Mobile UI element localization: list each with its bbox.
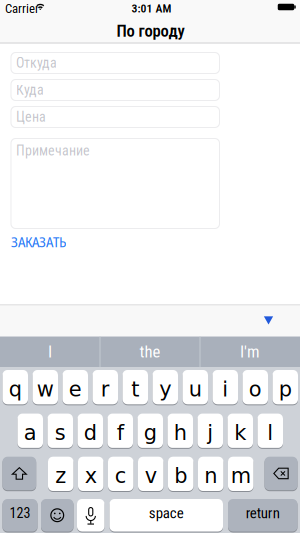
button[interactable]: a: [17, 413, 43, 448]
staticText: p: [279, 377, 292, 401]
staticText: I'm: [240, 342, 260, 361]
staticText: v: [145, 464, 157, 488]
staticText: Куда: [16, 82, 44, 98]
staticText: s: [55, 421, 66, 445]
staticText: space: [149, 504, 184, 522]
staticText: l: [267, 421, 273, 445]
button[interactable]: e: [62, 369, 88, 405]
staticText: q: [9, 377, 22, 401]
staticText: i: [222, 377, 228, 401]
button[interactable]: Numbers: [2, 498, 37, 532]
staticText: the: [139, 342, 160, 361]
button[interactable]: u: [182, 369, 208, 405]
button[interactable]: s: [47, 413, 73, 448]
staticText: o: [249, 377, 262, 401]
button[interactable]: ЗАКАЗАТЬ: [11, 232, 111, 250]
button[interactable]: i: [212, 369, 238, 405]
staticText: d: [84, 421, 97, 445]
button[interactable]: h: [167, 413, 193, 448]
staticText: z: [55, 464, 66, 488]
button[interactable]: q: [2, 369, 28, 405]
staticText: j: [207, 421, 213, 445]
staticText: f: [117, 421, 124, 445]
button[interactable]: w: [32, 369, 58, 405]
button[interactable]: o: [242, 369, 268, 405]
button[interactable]: the: [100, 336, 199, 367]
button[interactable]: I: [0, 336, 99, 367]
button[interactable]: b: [168, 456, 193, 491]
button[interactable]: x: [78, 456, 103, 491]
staticText: m: [231, 464, 251, 488]
button[interactable]: Emoji: [41, 498, 73, 532]
staticText: e: [69, 377, 82, 401]
button[interactable]: m: [228, 456, 253, 491]
button[interactable]: c: [108, 456, 133, 491]
staticText: По городу: [116, 21, 184, 41]
staticText: I: [48, 342, 52, 361]
staticText: 123: [9, 505, 30, 522]
staticText: k: [234, 421, 246, 445]
staticText: Откуда: [16, 55, 57, 71]
staticText: y: [159, 377, 171, 401]
button[interactable]: I'm: [200, 336, 299, 367]
staticText: Примечание: [16, 142, 90, 159]
button[interactable]: z: [48, 456, 73, 491]
staticText: Carrier: [5, 1, 39, 16]
staticText: w: [37, 377, 54, 401]
button[interactable]: r: [92, 369, 118, 405]
button[interactable]: t: [122, 369, 148, 405]
button[interactable]: Dictate: [77, 498, 104, 532]
button[interactable]: Shift: [2, 456, 36, 491]
button[interactable]: n: [198, 456, 223, 491]
staticText: t: [131, 377, 139, 401]
button[interactable]: v: [138, 456, 163, 491]
button[interactable]: l: [257, 413, 283, 448]
staticText: 3:01 AM: [131, 2, 171, 15]
staticText: r: [101, 377, 110, 401]
staticText: n: [204, 464, 217, 488]
button[interactable]: Dismiss keyboard: [264, 316, 273, 324]
button[interactable]: Примечание: [10, 138, 220, 229]
staticText: a: [24, 421, 37, 445]
button[interactable]: y: [152, 369, 178, 405]
button[interactable]: d: [77, 413, 103, 448]
button[interactable]: return: [228, 498, 297, 532]
staticText: ЗАКАЗАТЬ: [11, 231, 66, 252]
staticText: b: [174, 464, 187, 488]
staticText: return: [246, 504, 280, 522]
staticText: h: [174, 421, 187, 445]
button[interactable]: Delete: [264, 456, 297, 491]
button[interactable]: f: [107, 413, 133, 448]
button[interactable]: k: [227, 413, 253, 448]
button[interactable]: j: [197, 413, 223, 448]
staticText: x: [85, 464, 97, 488]
button[interactable]: space: [109, 498, 223, 532]
staticText: u: [189, 377, 202, 401]
button[interactable]: g: [137, 413, 163, 448]
staticText: Цена: [16, 109, 46, 125]
button[interactable]: p: [272, 369, 298, 405]
button[interactable]: Откуда: [10, 52, 220, 74]
button[interactable]: Цена: [10, 106, 220, 128]
staticText: g: [144, 421, 157, 445]
button[interactable]: Куда: [10, 79, 220, 101]
staticText: c: [115, 464, 127, 488]
